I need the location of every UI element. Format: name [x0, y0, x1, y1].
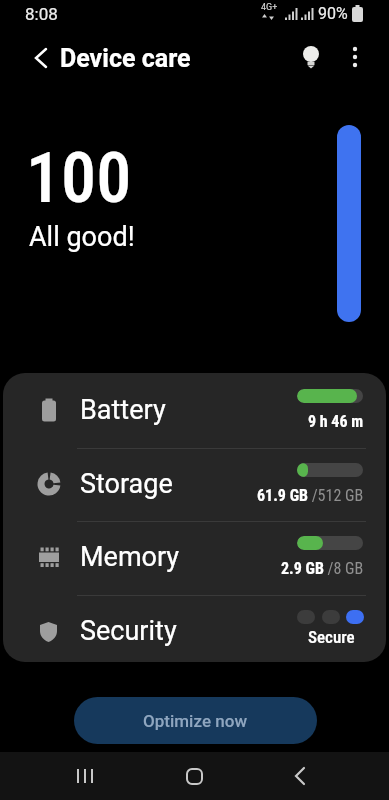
button[interactable]: Storage — [3, 447, 386, 521]
staticText: 100 — [26, 137, 132, 219]
staticText: 90% — [318, 4, 348, 23]
staticText: Storage — [80, 468, 173, 500]
staticText: Memory — [80, 541, 180, 573]
staticText: 4G+ — [261, 2, 278, 13]
button[interactable]: Memory — [3, 520, 386, 594]
staticText: Battery — [80, 394, 166, 426]
staticText: 61.9 GB /512 GB — [257, 486, 364, 505]
staticText: 9 h 46 m — [308, 412, 364, 431]
staticText: Secure — [308, 627, 355, 647]
button[interactable] — [340, 42, 370, 72]
button[interactable] — [172, 752, 216, 800]
staticText: Optimize now — [143, 711, 248, 731]
staticText: Device care — [60, 44, 191, 73]
staticText: 8:08 — [25, 4, 58, 24]
button[interactable] — [22, 43, 62, 73]
button[interactable]: Optimize now — [74, 697, 317, 744]
button[interactable] — [278, 752, 322, 800]
staticText: 2.9 GB /8 GB — [281, 559, 364, 578]
staticText: Security — [80, 615, 177, 647]
button[interactable]: Security — [3, 594, 386, 662]
button[interactable] — [63, 752, 107, 800]
button[interactable] — [296, 42, 326, 72]
button[interactable]: Battery — [3, 373, 386, 447]
staticText: All good! — [29, 221, 135, 253]
